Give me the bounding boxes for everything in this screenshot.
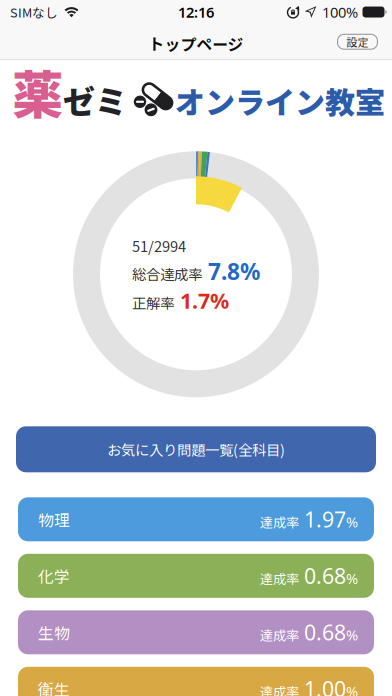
staticText: %	[346, 682, 358, 696]
staticText: 12:16	[178, 2, 214, 22]
button[interactable]: 化学	[18, 554, 374, 598]
staticText: 達成率	[260, 569, 299, 588]
staticText: 1.7%	[180, 286, 229, 315]
staticText: 1.97	[304, 505, 346, 533]
staticText: 7.8%	[208, 256, 260, 286]
staticText: トップページ	[148, 32, 243, 55]
staticText: 0.68	[304, 618, 346, 646]
staticText: 生物	[38, 621, 70, 644]
staticText: 達成率	[260, 512, 299, 531]
staticText: SIMなし	[10, 3, 58, 21]
staticText: ゼミ	[63, 77, 127, 123]
staticText: 0.68	[304, 562, 346, 590]
staticText: 化学	[38, 564, 70, 587]
staticText: 100%	[322, 2, 358, 22]
staticText: 総合達成率	[132, 263, 202, 284]
button[interactable]: 衛生	[18, 667, 374, 696]
staticText: %	[346, 569, 358, 588]
staticText: 1.00	[304, 675, 346, 696]
staticText: 正解率	[132, 292, 174, 313]
button[interactable]: お気に入り問題一覧(全科目)	[16, 426, 376, 472]
staticText: %	[346, 625, 358, 645]
staticText: %	[346, 512, 358, 532]
button[interactable]: 物理	[18, 497, 374, 541]
button[interactable]: 生物	[18, 610, 374, 654]
staticText: 設定	[346, 34, 368, 50]
staticText: 達成率	[260, 625, 299, 644]
button[interactable]: 設定	[337, 34, 378, 50]
staticText: オンライン教室	[175, 79, 385, 122]
staticText: 達成率	[260, 682, 299, 696]
staticText: 51/2994	[132, 235, 186, 256]
staticText: 物理	[38, 508, 70, 531]
staticText: 衛生	[38, 677, 70, 696]
staticText: 薬	[12, 54, 63, 128]
staticText: お気に入り問題一覧(全科目)	[107, 439, 285, 460]
